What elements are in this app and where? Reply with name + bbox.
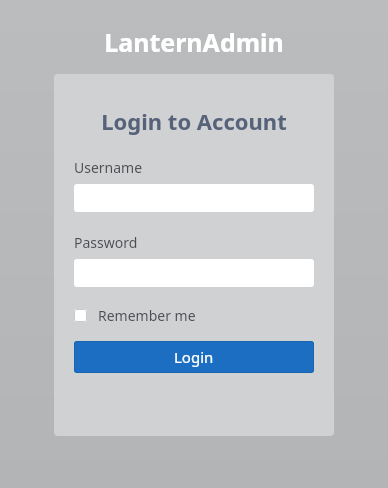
button[interactable]: Remember me	[74, 303, 196, 328]
staticText: Login to Account	[74, 106, 314, 136]
staticText: LanternAdmin	[0, 25, 388, 59]
staticText: Remember me	[98, 306, 196, 325]
staticText: Password	[74, 233, 138, 252]
staticText: Username	[74, 158, 143, 177]
staticText: Login	[174, 347, 214, 367]
button[interactable]: Login	[74, 341, 314, 373]
